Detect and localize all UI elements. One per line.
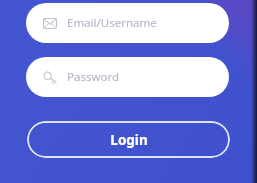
button[interactable]: Email [26, 3, 229, 43]
other: Email [43, 18, 57, 29]
staticText: Login [110, 131, 148, 149]
staticText: Password [67, 69, 120, 85]
button[interactable]: Password [26, 57, 229, 97]
other: Password [43, 71, 57, 83]
staticText: Email/Username [67, 15, 157, 31]
button[interactable]: Login [27, 121, 230, 158]
